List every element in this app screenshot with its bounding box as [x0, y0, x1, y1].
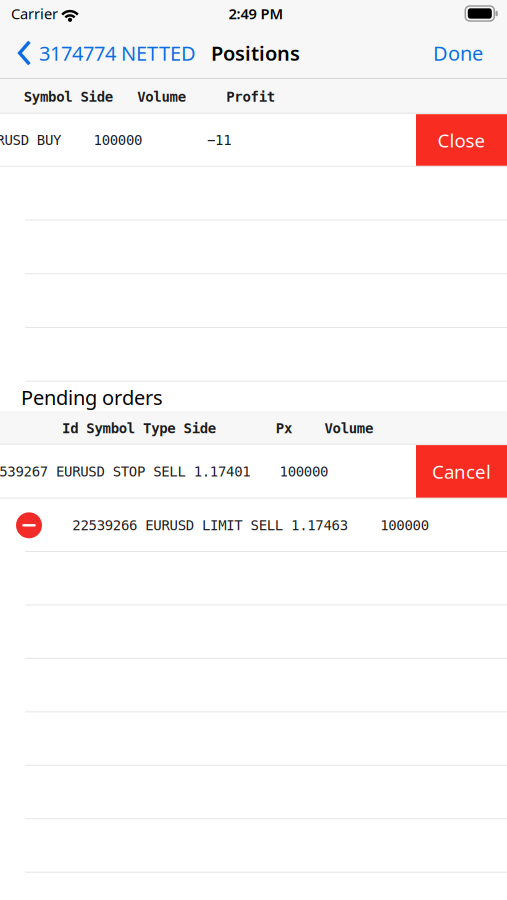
- staticText: 100000: [280, 463, 328, 480]
- staticText: 2:49 PM: [228, 4, 283, 23]
- button[interactable]: Cancel: [416, 445, 507, 498]
- staticText: Carrier: [11, 4, 58, 23]
- staticText: 3174774 NETTED: [39, 40, 196, 66]
- button[interactable]: Close: [416, 114, 507, 166]
- button[interactable]: Done: [421, 27, 495, 79]
- button[interactable]: Delete order: [16, 512, 42, 538]
- staticText: Done: [433, 40, 483, 66]
- button[interactable]: 3174774 NETTED: [0, 27, 204, 79]
- staticText: Cancel: [432, 459, 491, 484]
- staticText: 22539267 EURUSD STOP SELL 1.17401: [0, 463, 250, 480]
- staticText: EURUSD BUY 100000 −11: [0, 132, 231, 148]
- staticText: 22539266 EURUSD LIMIT SELL 1.17463 10000…: [72, 517, 429, 533]
- staticText: Pending orders: [21, 384, 163, 411]
- staticText: Close: [437, 128, 485, 153]
- staticText: Positions: [211, 40, 300, 66]
- staticText: Symbol Side Volume Profit: [24, 89, 275, 105]
- staticText: Id Symbol Type Side: [62, 420, 216, 436]
- staticText: Px Volume: [276, 420, 373, 436]
